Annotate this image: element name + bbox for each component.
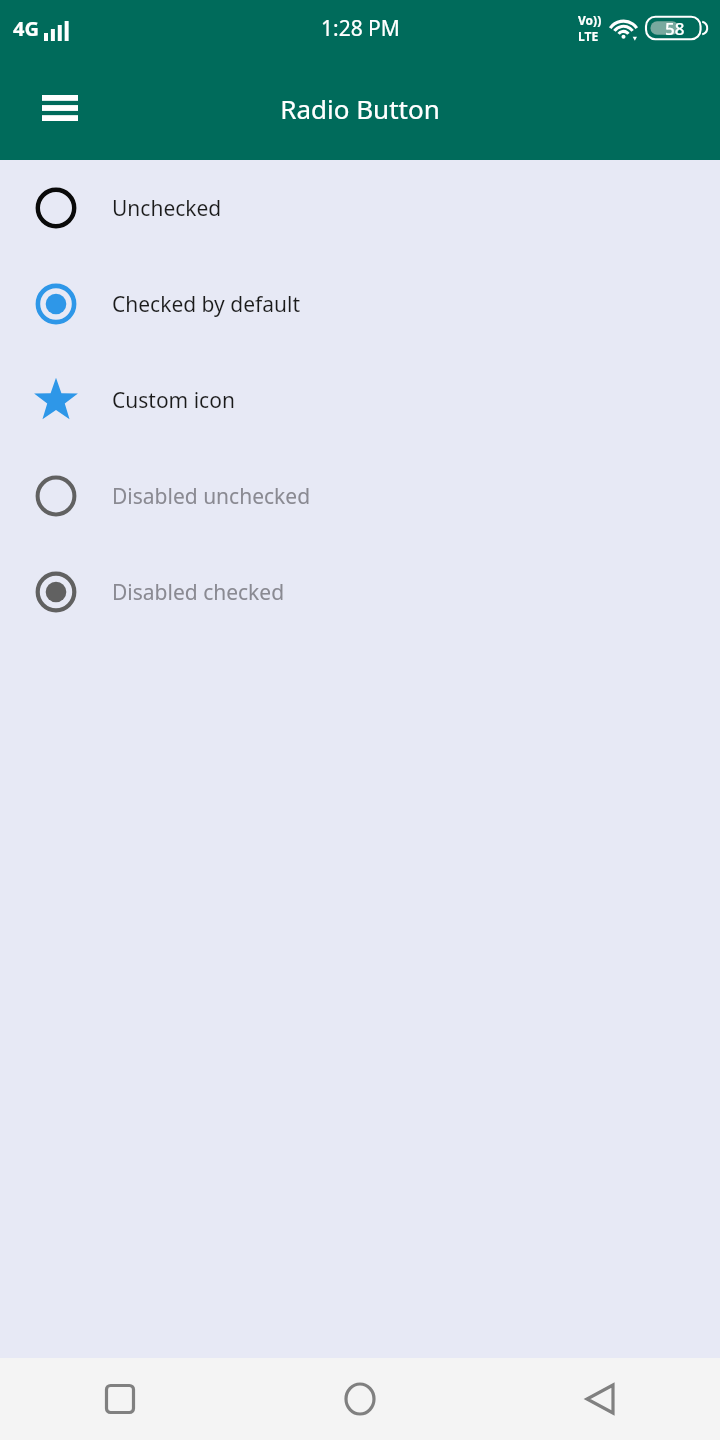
staticText: 4G xyxy=(13,15,39,42)
button[interactable]: Disabled checked xyxy=(0,544,720,640)
button[interactable]: Unchecked xyxy=(0,160,720,256)
staticText: 58 xyxy=(665,17,685,40)
button[interactable]: Home xyxy=(240,1358,480,1440)
button[interactable]: Open navigation menu xyxy=(24,72,96,144)
staticText: Radio Button xyxy=(280,91,440,126)
button[interactable]: Disabled unchecked xyxy=(0,448,720,544)
button[interactable]: Back xyxy=(480,1358,720,1440)
staticText: Checked by default xyxy=(112,290,301,319)
staticText: Vo)) xyxy=(578,12,602,28)
button[interactable]: Checked by default xyxy=(0,256,720,352)
staticText: Disabled unchecked xyxy=(112,482,311,511)
staticText: Unchecked xyxy=(112,194,222,223)
staticText: 1:28 PM xyxy=(321,14,400,43)
staticText: Custom icon xyxy=(112,386,235,415)
staticText: Disabled checked xyxy=(112,578,285,607)
button[interactable]: Recent apps xyxy=(0,1358,240,1440)
staticText: LTE xyxy=(578,28,599,44)
button[interactable]: Custom icon xyxy=(0,352,720,448)
